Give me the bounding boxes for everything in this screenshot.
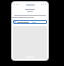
button[interactable]: Item icon xyxy=(13,20,47,24)
